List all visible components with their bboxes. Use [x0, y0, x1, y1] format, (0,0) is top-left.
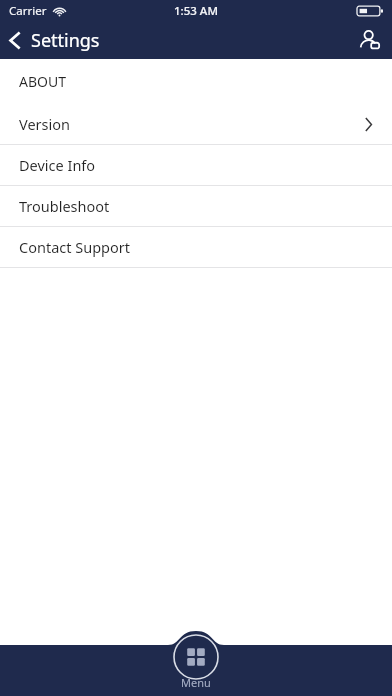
button[interactable]: Troubleshoot — [0, 186, 392, 226]
staticText: Version — [19, 114, 70, 134]
staticText: Device Info — [19, 155, 96, 175]
button[interactable]: Version — [0, 104, 392, 144]
button[interactable]: Settings — [0, 22, 112, 59]
staticText: Settings — [31, 28, 100, 53]
staticText: Troubleshoot — [19, 196, 110, 216]
button[interactable]: Device Info — [0, 145, 392, 185]
button[interactable]: Account — [347, 22, 392, 59]
staticText: Carrier — [9, 3, 47, 19]
button[interactable]: Contact Support — [0, 227, 392, 267]
staticText: 1:53 AM — [174, 3, 218, 19]
staticText: Contact Support — [19, 237, 130, 257]
button[interactable]: Menu — [156, 634, 236, 696]
staticText: ABOUT — [19, 72, 66, 91]
staticText: Menu — [181, 675, 211, 690]
